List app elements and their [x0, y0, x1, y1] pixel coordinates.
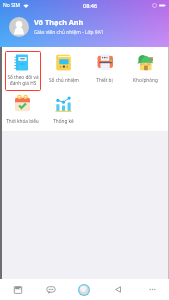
- staticText: Thiết bị: [96, 77, 113, 83]
- button[interactable]: Sổ theo dõi và đánh giá HS: [2, 49, 43, 90]
- button[interactable]: Messages: [39, 279, 63, 300]
- button[interactable]: Kho/phòng: [125, 49, 166, 90]
- staticText: Kho/phòng: [133, 77, 158, 83]
- button[interactable]: Sổ chủ nhiệm: [43, 49, 84, 90]
- staticText: Võ Thạch Anh: [34, 17, 84, 27]
- button[interactable]: Home: [72, 279, 96, 300]
- staticText: 08:46: [83, 2, 98, 9]
- staticText: Sổ theo dõi và đánh giá HS: [7, 74, 39, 86]
- staticText: Giáo viên chủ nhiệm - Lớp 9A1: [34, 29, 104, 36]
- button[interactable]: Thống kê: [43, 90, 84, 131]
- button[interactable]: Thiết bị: [84, 49, 125, 90]
- staticText: No SIM: [3, 2, 21, 9]
- button[interactable]: More options: [140, 279, 164, 300]
- staticText: Thời khóa biểu: [6, 118, 39, 124]
- button[interactable]: Profile photo: [9, 17, 29, 37]
- button[interactable]: Back: [106, 279, 130, 300]
- button[interactable]: Recent apps: [6, 279, 30, 300]
- staticText: Thống kê: [53, 118, 74, 124]
- staticText: Sổ chủ nhiệm: [49, 77, 79, 83]
- button[interactable]: Thời khóa biểu: [2, 90, 43, 131]
